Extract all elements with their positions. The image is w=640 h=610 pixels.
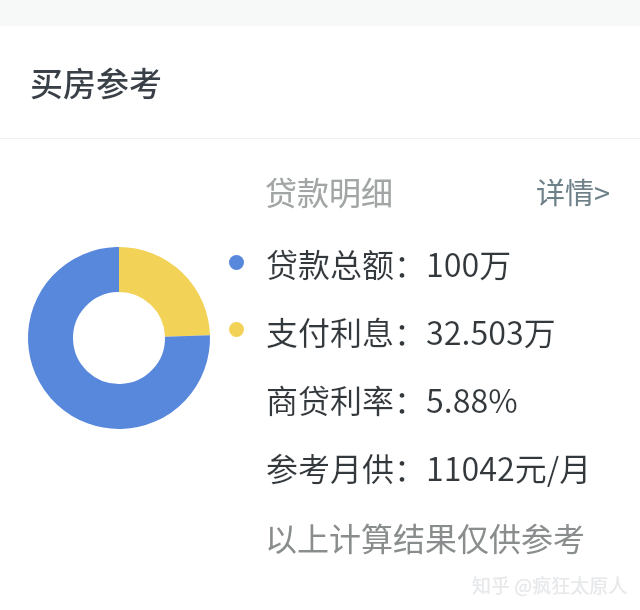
staticText: 买房参考 — [30, 58, 162, 106]
button[interactable]: 贷款总额：100万 — [266, 240, 512, 286]
staticText: 知乎 @疯狂太原人 — [472, 571, 628, 599]
staticText: 以上计算结果仅供参考 — [265, 514, 586, 560]
staticText: 贷款总额：100万 — [266, 240, 512, 286]
button[interactable]: 参考月供：11042元/月 — [266, 444, 592, 490]
button[interactable]: 支付利息：32.503万 — [266, 308, 556, 354]
button[interactable]: 查看贷款明细详情 — [520, 162, 627, 220]
staticText: 支付利息：32.503万 — [266, 308, 556, 354]
staticText: 贷款明细 — [265, 168, 394, 214]
staticText: 详情> — [536, 170, 611, 212]
staticText: 参考月供：11042元/月 — [266, 444, 592, 490]
button[interactable]: 贷款构成环形图：本金与利息占比 — [28, 247, 210, 429]
staticText: 商贷利率：5.88% — [266, 376, 518, 422]
button[interactable]: 商贷利率：5.88% — [266, 376, 518, 422]
